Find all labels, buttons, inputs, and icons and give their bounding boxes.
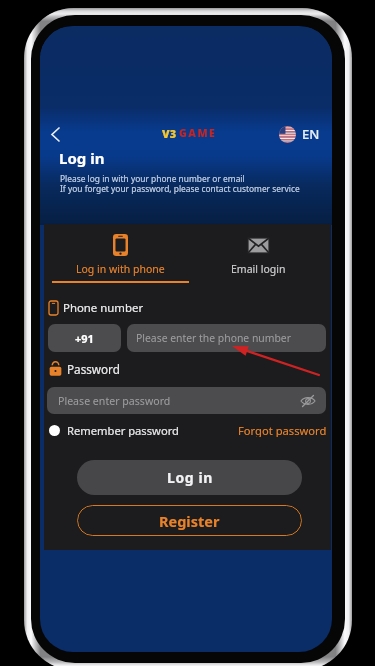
button[interactable]: Remember password (49, 423, 179, 437)
button[interactable]: Log in with phone (52, 227, 189, 287)
button[interactable]: Log in (77, 460, 302, 495)
button[interactable]: Show password (300, 393, 316, 409)
button[interactable]: Email login (189, 227, 327, 287)
staticText: If you forget your password, please cont… (60, 183, 300, 194)
staticText: Please enter password (58, 394, 171, 408)
staticText: Log in (167, 468, 213, 487)
staticText: +91 (75, 331, 94, 346)
staticText: Remember password (67, 423, 179, 437)
staticText: Please log in with your phone number or … (60, 173, 245, 184)
staticText: Phone number (63, 300, 144, 315)
staticText: GAME (179, 126, 217, 140)
button[interactable]: Please enter the phone number (127, 324, 326, 352)
staticText: Log in with phone (76, 262, 165, 276)
staticText: Log in (59, 148, 105, 168)
staticText: Please enter the phone number (136, 331, 291, 345)
button[interactable]: Please enter password (47, 387, 326, 414)
staticText: EN (302, 125, 320, 143)
button[interactable]: Register (77, 505, 302, 536)
staticText: Password (67, 361, 120, 376)
button[interactable]: Back (43, 122, 67, 146)
button[interactable]: Forgot password (238, 423, 327, 437)
button[interactable]: EN (279, 123, 320, 145)
staticText: Register (159, 511, 220, 531)
staticText: Email login (231, 262, 286, 276)
staticText: V3 (162, 126, 177, 141)
button[interactable]: +91 (48, 324, 121, 352)
